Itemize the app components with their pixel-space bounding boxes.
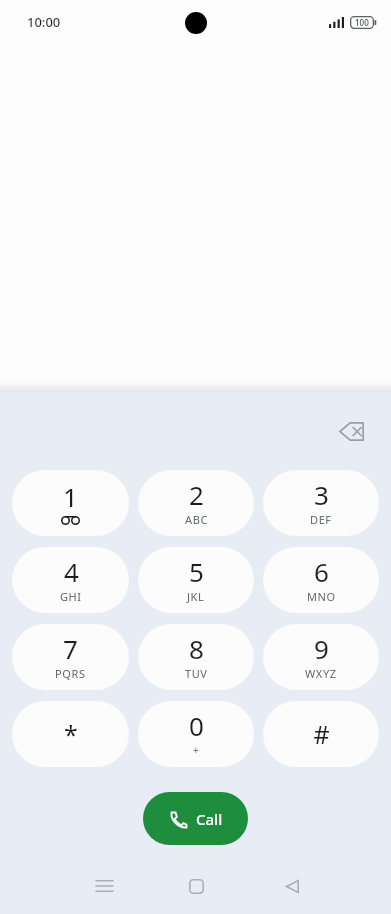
staticText: JKL — [187, 589, 205, 604]
button[interactable]: 6 — [263, 547, 379, 613]
staticText: PQRS — [55, 666, 86, 681]
staticText: 3 — [314, 477, 329, 512]
staticText: 10:00 — [27, 13, 61, 31]
staticText: Call — [196, 809, 223, 829]
staticText: MNO — [307, 589, 336, 604]
button[interactable]: 1 — [12, 470, 129, 536]
staticText: DEF — [310, 512, 332, 527]
staticText: 0 — [189, 708, 204, 743]
button[interactable]: 5 — [138, 547, 254, 613]
staticText: 2 — [189, 477, 204, 512]
staticText: + — [193, 743, 200, 757]
staticText: WXYZ — [305, 666, 337, 681]
staticText: # — [313, 717, 330, 751]
staticText: 100 — [355, 17, 369, 28]
button[interactable]: Backspace — [327, 407, 375, 455]
staticText: TUV — [185, 666, 208, 681]
staticText: * — [64, 717, 78, 751]
button[interactable]: 7 — [12, 624, 129, 690]
button[interactable]: 8 — [138, 624, 254, 690]
button[interactable]: 4 — [12, 547, 129, 613]
staticText: GHI — [60, 589, 82, 604]
button[interactable]: Back — [268, 862, 316, 910]
button[interactable]: Call — [143, 792, 248, 845]
button[interactable]: Recent apps — [80, 862, 128, 910]
staticText: 6 — [314, 554, 329, 589]
staticText: 9 — [314, 631, 329, 666]
button[interactable]: 2 — [138, 470, 254, 536]
button[interactable]: # — [263, 701, 379, 767]
staticText: 1 — [63, 479, 78, 514]
button[interactable]: 0 — [138, 701, 254, 767]
button[interactable]: * — [12, 701, 129, 767]
button[interactable]: Home — [172, 862, 220, 910]
staticText: 7 — [63, 631, 78, 666]
staticText: 8 — [189, 631, 204, 666]
button[interactable]: 9 — [263, 624, 379, 690]
button[interactable]: 3 — [263, 470, 379, 536]
staticText: 5 — [189, 554, 204, 589]
staticText: 4 — [64, 554, 79, 589]
staticText: ABC — [185, 512, 208, 527]
